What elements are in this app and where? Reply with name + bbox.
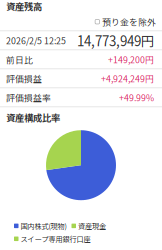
- staticText: 2026/2/5 12:25: [6, 34, 66, 47]
- staticText: 預り金を除外: [102, 15, 156, 28]
- button[interactable]: 預り金を除外: [95, 14, 162, 29]
- staticText: 資産現金: [78, 221, 106, 231]
- staticText: スイープ専用銀行口座: [20, 234, 90, 244]
- staticText: 前日比: [6, 53, 33, 66]
- staticText: 国内株式(現物): [20, 221, 66, 231]
- staticText: 評価損益: [6, 72, 42, 85]
- staticText: 評価損益率: [6, 91, 51, 104]
- staticText: +4,924,249円: [101, 72, 154, 85]
- staticText: +149,200円: [108, 53, 154, 66]
- staticText: 14,773,949円: [77, 31, 154, 50]
- staticText: 資産残高: [6, 0, 42, 13]
- staticText: 資産構成比率: [6, 111, 60, 124]
- staticText: +49.99%: [119, 91, 154, 104]
